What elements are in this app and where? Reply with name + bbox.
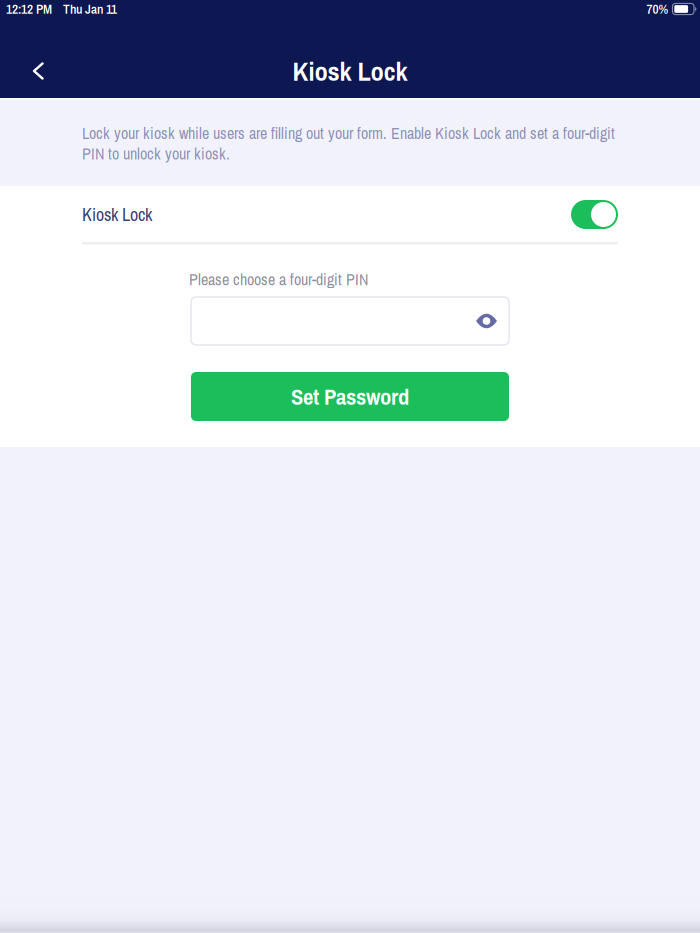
staticText: 12:12 PM [6, 0, 52, 18]
staticText: 70% [646, 0, 668, 18]
button[interactable]: Set Password [191, 372, 509, 421]
staticText: Kiosk Lock [292, 53, 407, 89]
staticText: Please choose a four-digit PIN [189, 269, 368, 290]
button[interactable]: Back [14, 47, 62, 95]
staticText: Lock your kiosk while users are filling … [82, 122, 615, 164]
staticText: Thu Jan 11 [63, 0, 117, 18]
staticText: Kiosk Lock [82, 202, 152, 227]
staticText: Set Password [291, 381, 409, 412]
button[interactable]: Show PIN [191, 297, 509, 345]
button[interactable]: Kiosk Lock [82, 186, 618, 243]
